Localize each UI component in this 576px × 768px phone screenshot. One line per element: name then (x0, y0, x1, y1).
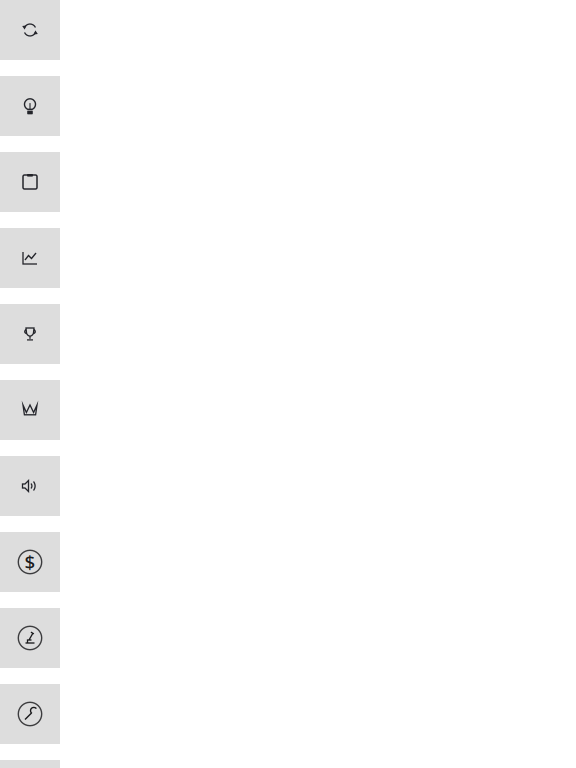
staticText: $ (24, 550, 35, 574)
